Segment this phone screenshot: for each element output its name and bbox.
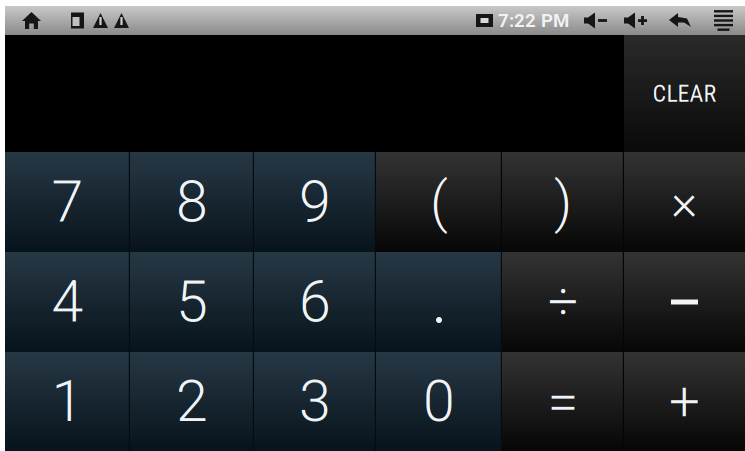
button[interactable]: 7 [5,152,130,252]
staticText: 2 [176,368,208,435]
button[interactable]: 1 [5,352,130,451]
button[interactable]: ( [376,152,502,252]
staticText: = [547,369,578,434]
button[interactable]: 6 [254,252,376,352]
staticText: CLEAR [652,79,716,107]
staticText: ( [430,169,448,235]
button[interactable]: 9 [254,152,376,252]
staticText: + [669,369,700,434]
button[interactable]: ) [502,152,624,252]
staticText: 7 [51,168,83,236]
button[interactable]: 2 [130,352,254,451]
button[interactable]: 4 [5,252,130,352]
button[interactable] [376,252,502,352]
staticText: 3 [299,368,331,435]
button[interactable]: 0 [376,352,502,451]
staticText: 0 [423,368,455,435]
staticText: 1 [51,368,83,435]
staticText: 8 [176,168,208,236]
staticText: 4 [51,268,83,336]
button[interactable]: + [624,352,745,451]
button[interactable]: ÷ [502,252,624,352]
staticText: ÷ [548,271,578,333]
staticText: 7:22 PM [498,10,569,31]
button[interactable]: 3 [254,352,376,451]
staticText: 6 [299,268,331,336]
staticText: × [671,172,698,232]
staticText: 5 [176,268,208,336]
button[interactable]: 5 [130,252,254,352]
button[interactable]: CLEAR [624,35,745,152]
button[interactable] [624,252,745,352]
button[interactable]: = [502,352,624,451]
button[interactable]: 8 [130,152,254,252]
button[interactable]: × [624,152,745,252]
staticText: ) [554,169,572,235]
staticText: 9 [299,168,331,236]
